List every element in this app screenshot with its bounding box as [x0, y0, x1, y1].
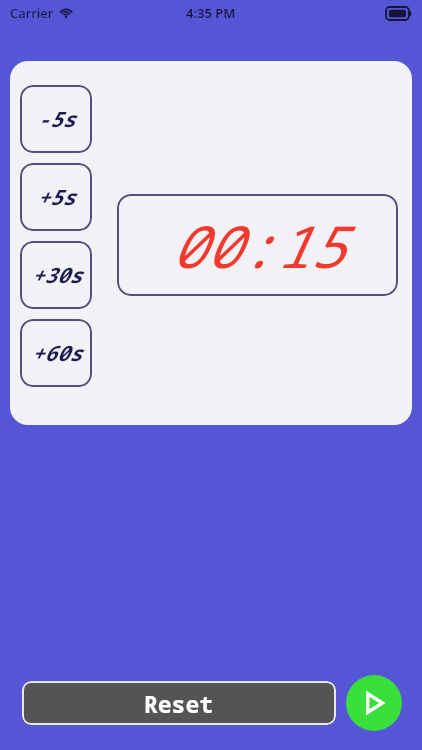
- staticText: +60s: [31, 339, 82, 368]
- button[interactable]: Reset: [22, 681, 336, 725]
- staticText: Reset: [144, 688, 214, 719]
- button[interactable]: +5s: [20, 163, 92, 231]
- button[interactable]: -5s: [20, 85, 92, 153]
- staticText: +30s: [31, 261, 82, 290]
- staticText: 4:35 PM: [186, 4, 236, 22]
- staticText: Carrier: [10, 4, 54, 22]
- staticText: -5s: [37, 105, 75, 134]
- button[interactable]: +30s: [20, 241, 92, 309]
- staticText: 00:15: [170, 206, 345, 285]
- staticText: +5s: [37, 183, 75, 212]
- button[interactable]: Start timer: [346, 675, 402, 731]
- button[interactable]: +60s: [20, 319, 92, 387]
